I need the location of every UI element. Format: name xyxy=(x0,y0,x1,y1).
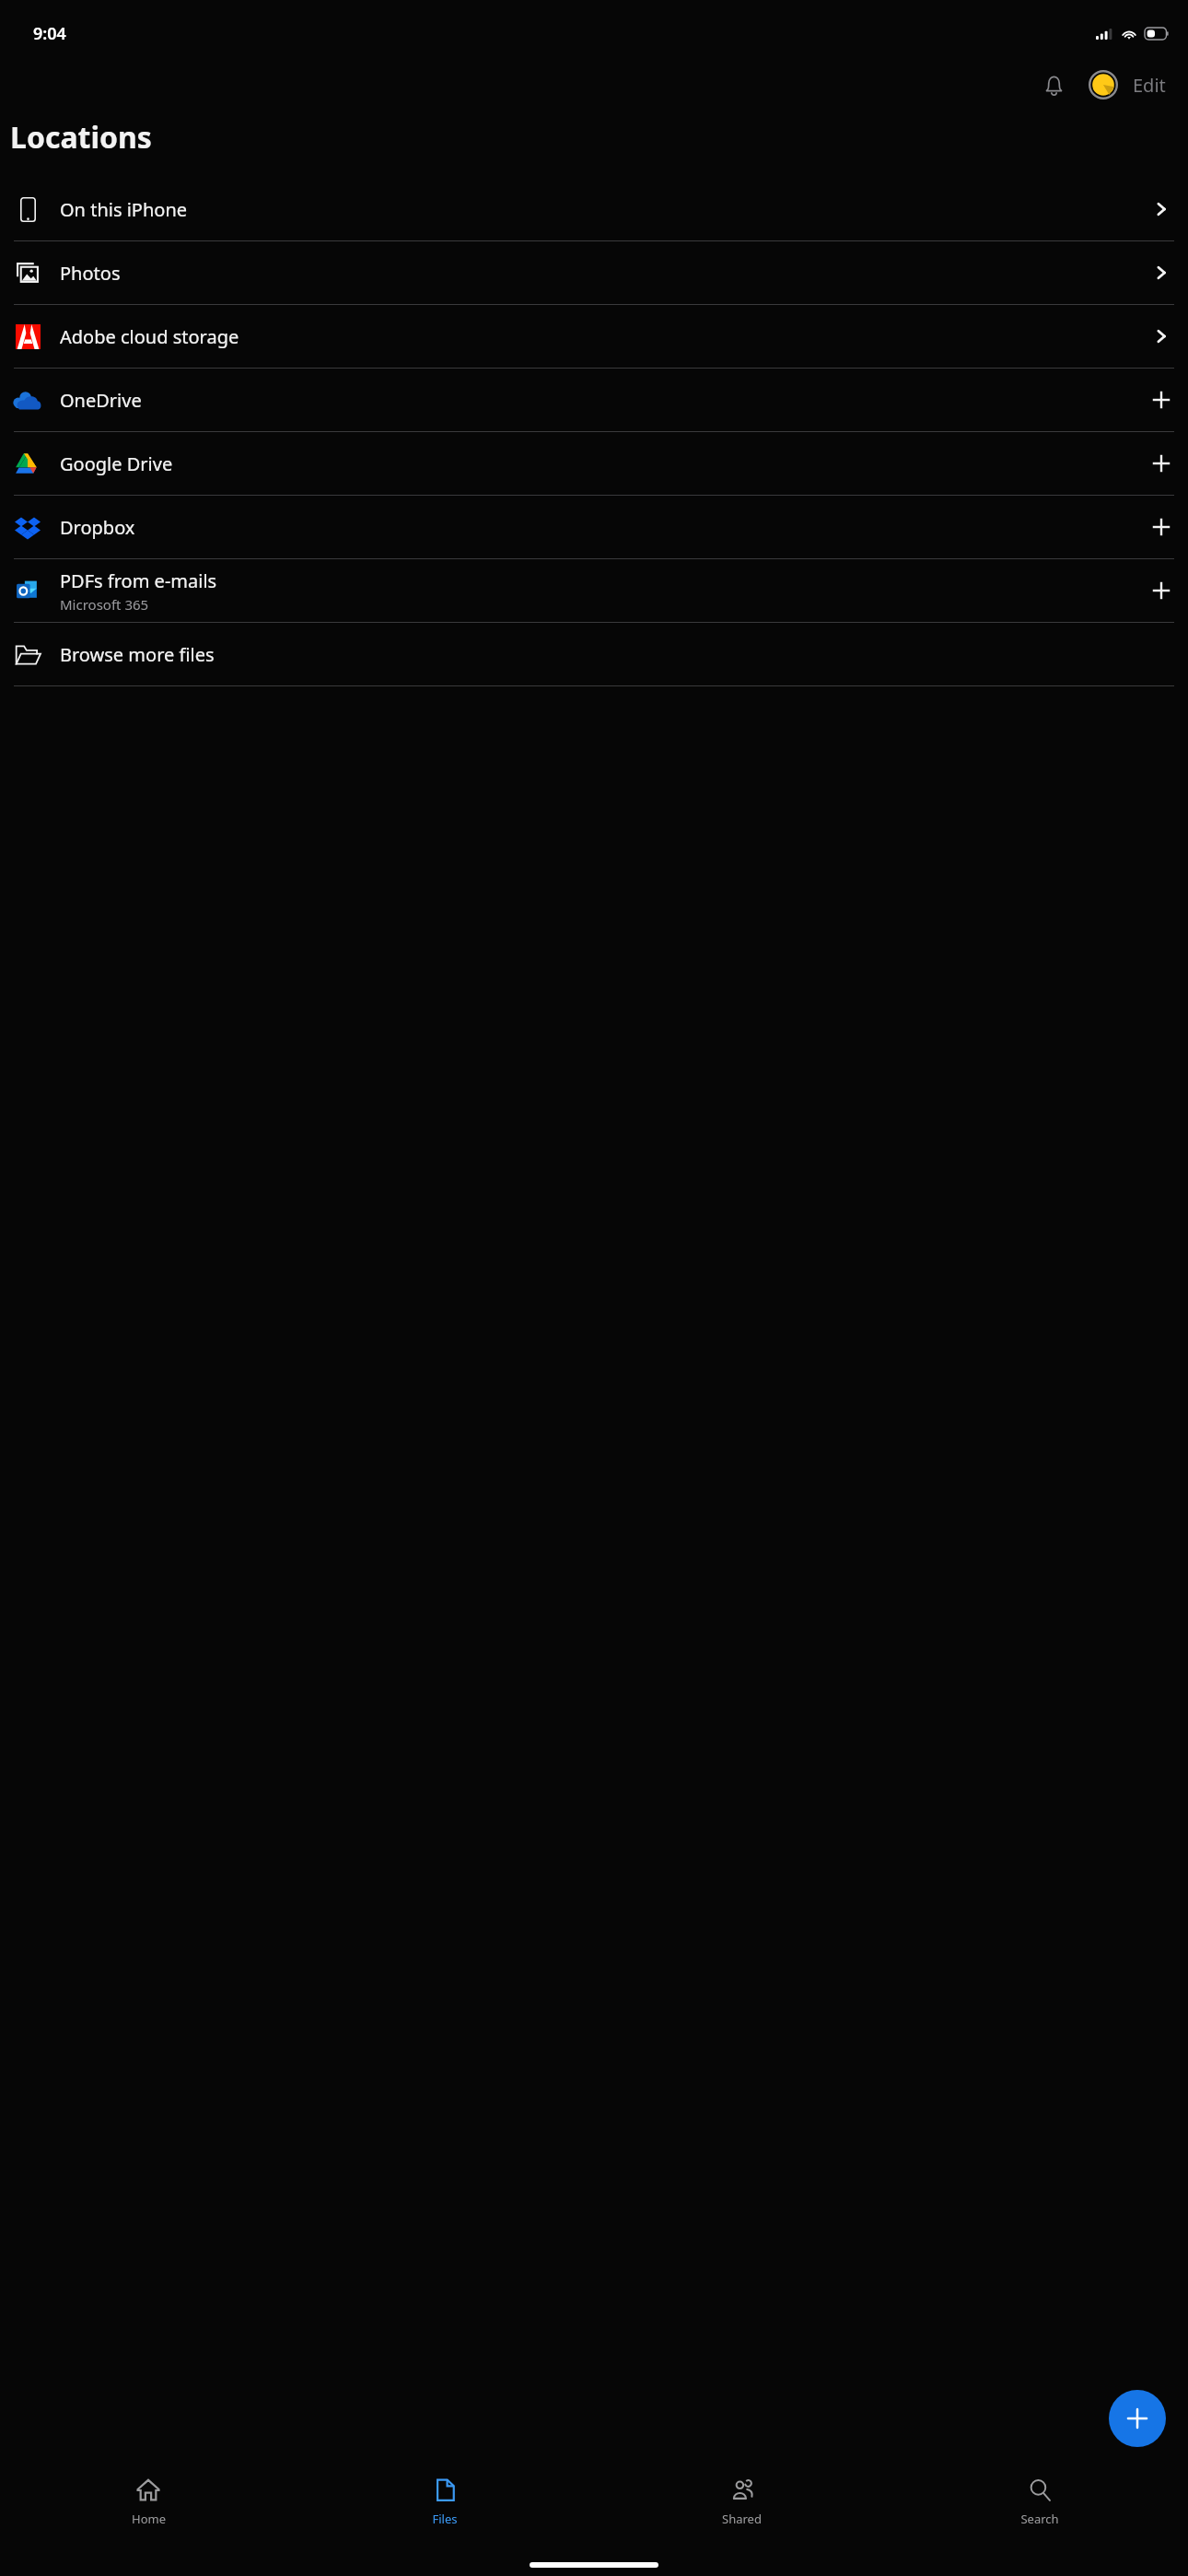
staticText: On this iPhone xyxy=(60,197,188,222)
staticText: Locations xyxy=(10,117,152,158)
button[interactable]: Search xyxy=(891,2467,1188,2543)
staticText: Browse more files xyxy=(60,642,215,667)
button[interactable]: Google Drive xyxy=(0,432,1188,495)
staticText: Edit xyxy=(1133,73,1166,98)
button[interactable]: Dropbox xyxy=(0,496,1188,558)
staticText: Shared xyxy=(722,2511,762,2527)
button[interactable]: Notifications xyxy=(1033,64,1074,105)
button[interactable]: Create xyxy=(1109,2390,1166,2447)
staticText: Photos xyxy=(60,261,121,286)
staticText: Dropbox xyxy=(60,515,135,540)
staticText: Microsoft 365 xyxy=(60,595,149,614)
button[interactable]: Photos xyxy=(0,241,1188,304)
button[interactable]: OneDrive xyxy=(0,369,1188,431)
button[interactable]: Edit xyxy=(1127,65,1171,105)
button[interactable]: Files xyxy=(297,2467,593,2543)
staticText: OneDrive xyxy=(60,388,142,413)
staticText: PDFs from e-mails xyxy=(60,568,217,593)
staticText: Files xyxy=(432,2511,458,2527)
button[interactable]: PDFs from e-mails xyxy=(0,559,1188,622)
staticText: Home xyxy=(132,2511,166,2527)
button[interactable]: Home xyxy=(0,2467,297,2543)
staticText: 9:04 xyxy=(33,22,66,45)
button[interactable]: On this iPhone xyxy=(0,178,1188,240)
button[interactable]: Browse more files xyxy=(0,623,1188,685)
button[interactable]: Shared xyxy=(593,2467,891,2543)
staticText: Search xyxy=(1020,2511,1059,2527)
button[interactable]: Account xyxy=(1083,64,1124,105)
staticText: Adobe cloud storage xyxy=(60,324,239,349)
button[interactable]: Adobe cloud storage xyxy=(0,305,1188,368)
staticText: Google Drive xyxy=(60,451,173,476)
